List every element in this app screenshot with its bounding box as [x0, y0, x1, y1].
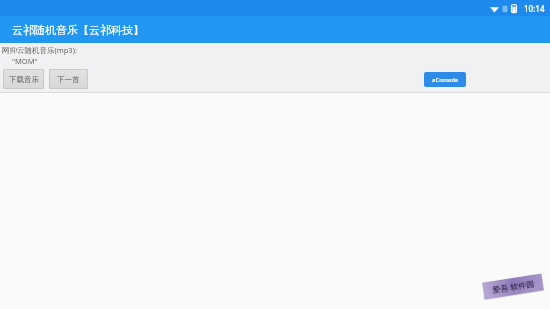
button[interactable]: 下一首 — [49, 69, 88, 89]
staticText: 爱吾 软件园 — [491, 278, 536, 295]
staticText: aConsole — [432, 76, 459, 84]
staticText: 云祁随机音乐【云祁科技】 — [12, 23, 144, 37]
staticText: 下一首 — [57, 75, 80, 84]
staticText: 网抑云随机音乐(mp3): — [2, 45, 77, 55]
staticText: 下载音乐 — [9, 75, 39, 84]
button[interactable]: aConsole — [424, 72, 466, 87]
staticText: 10:14 — [524, 3, 545, 14]
button[interactable]: 下载音乐 — [3, 69, 44, 89]
staticText: "MOM" — [12, 56, 38, 66]
